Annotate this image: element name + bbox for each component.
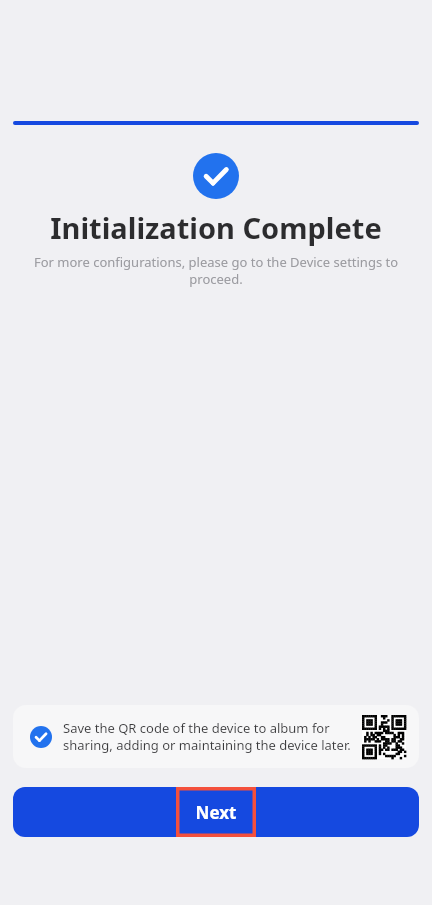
other: Device QR code — [362, 715, 406, 759]
staticText: Save the QR code of the device to album … — [63, 719, 354, 754]
button[interactable]: Save the QR code of the device to album … — [13, 705, 419, 768]
staticText: Initialization Complete — [0, 208, 432, 247]
button[interactable]: Next — [13, 787, 419, 837]
staticText: For more configurations, please go to th… — [26, 253, 406, 288]
staticText: Next — [176, 801, 256, 824]
